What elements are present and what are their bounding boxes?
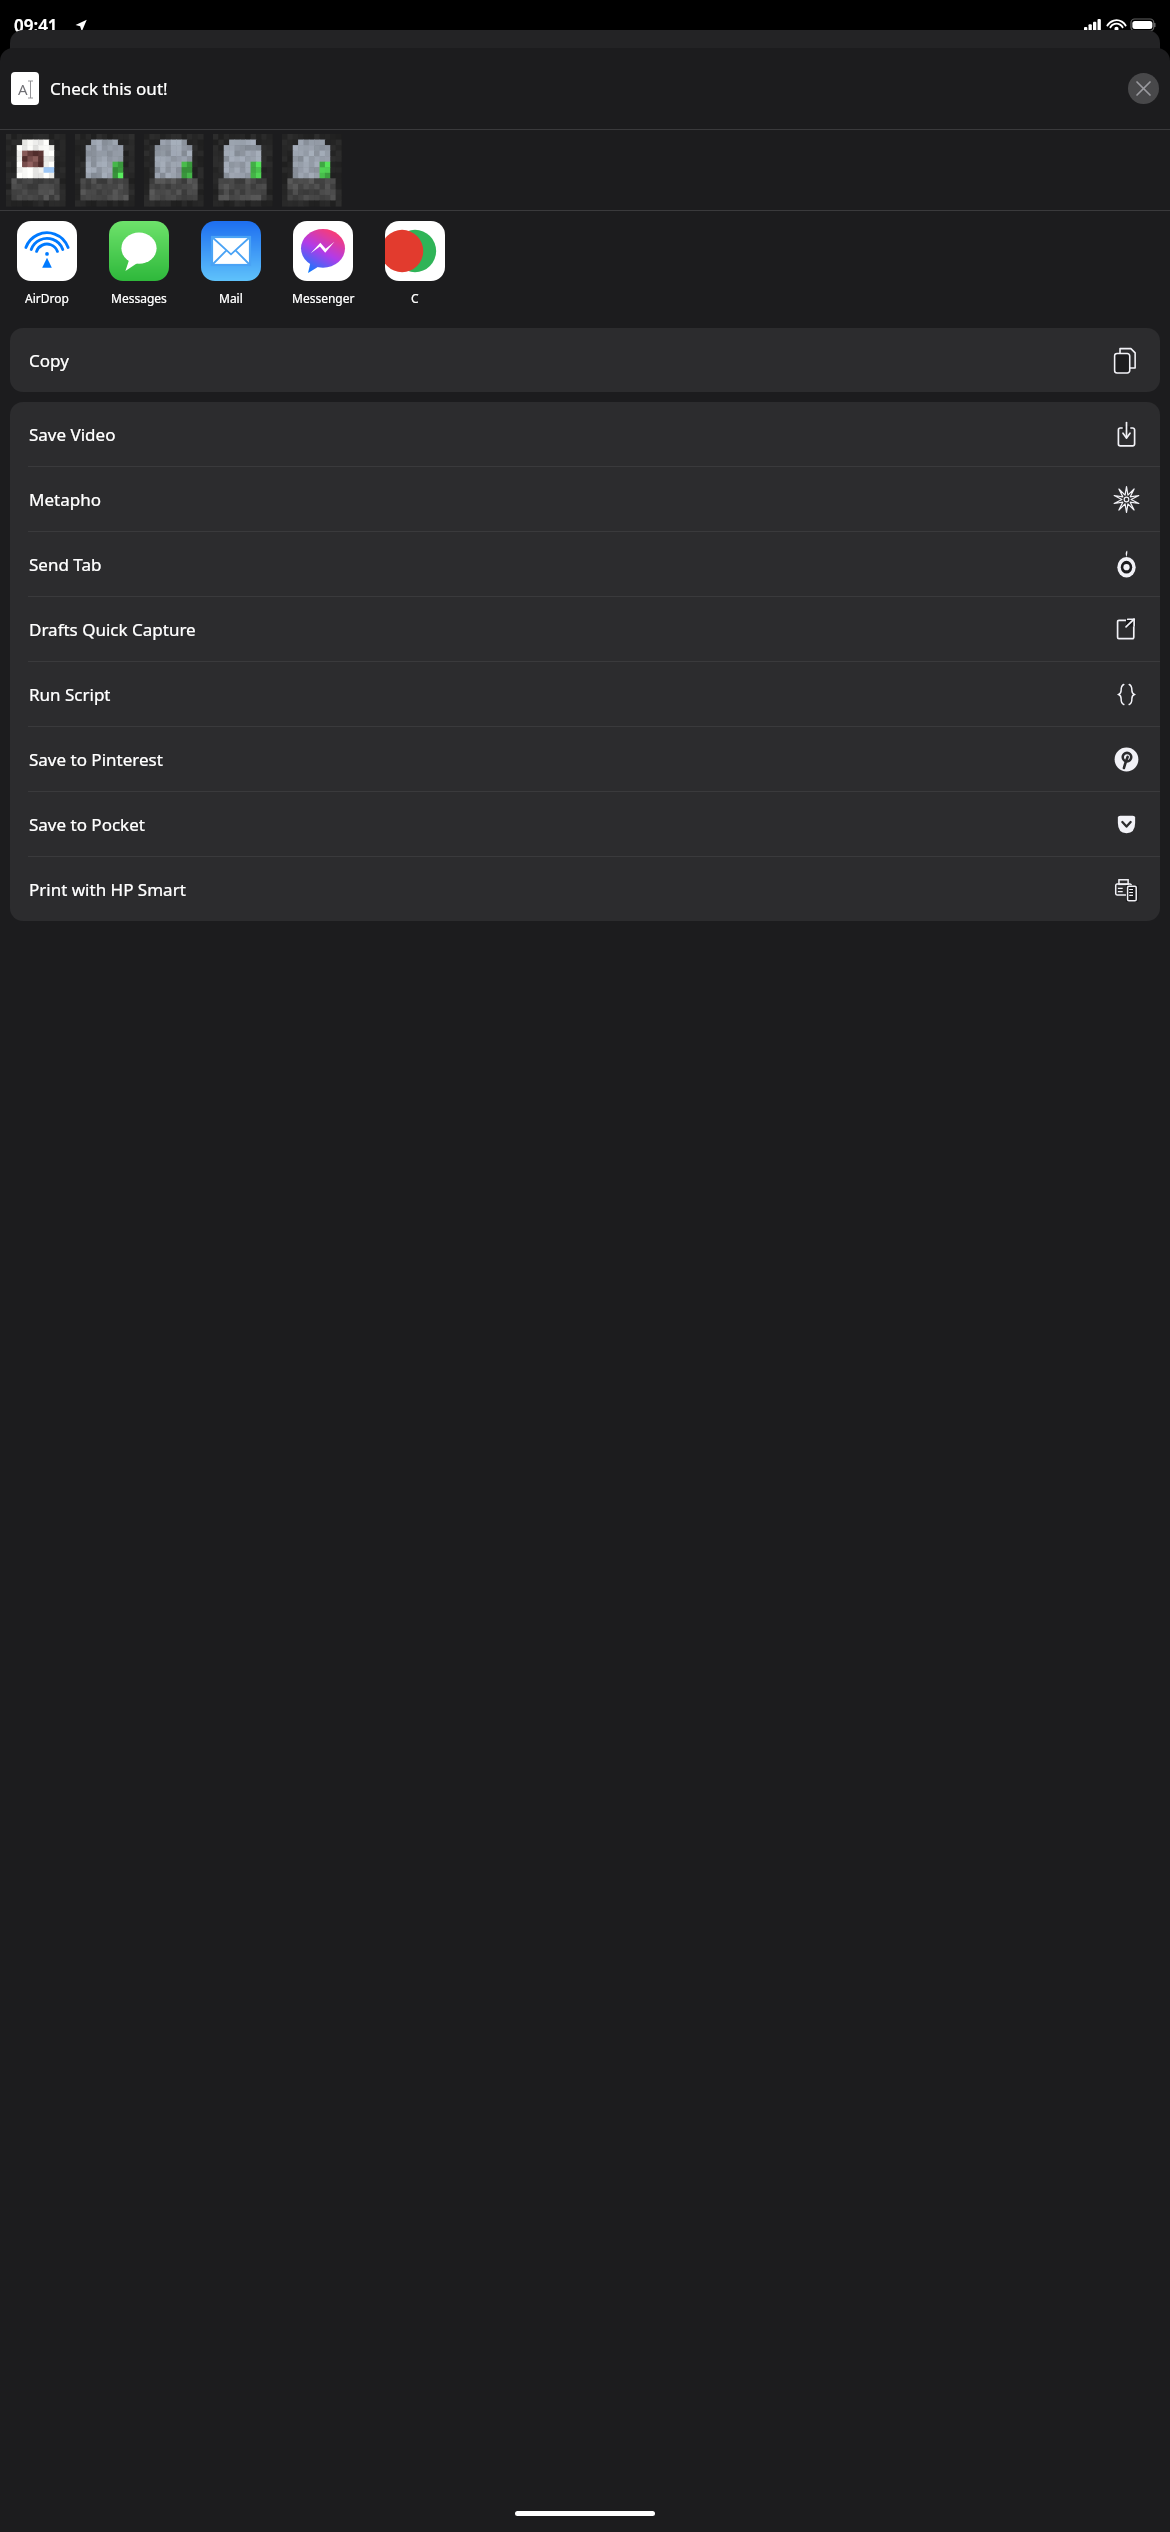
button[interactable]: Metapho xyxy=(10,467,1160,531)
staticText: C xyxy=(411,290,419,306)
button[interactable]: Save to Pinterest xyxy=(10,727,1160,791)
button[interactable]: Photo thumbnail xyxy=(144,134,203,206)
staticText: Send Tab xyxy=(29,553,1113,576)
staticText: Check this out! xyxy=(50,77,1128,100)
button[interactable]: Mail xyxy=(195,211,267,306)
staticText: 09:41 xyxy=(14,14,58,37)
staticText: Print with HP Smart xyxy=(29,878,1113,901)
staticText: Messages xyxy=(111,290,167,306)
button[interactable]: Save to Pocket xyxy=(10,792,1160,856)
button[interactable]: Photo thumbnail xyxy=(282,134,341,206)
button[interactable]: Drafts Quick Capture xyxy=(10,597,1160,661)
button[interactable]: Messenger xyxy=(287,211,359,306)
staticText: Save Video xyxy=(29,423,1113,446)
staticText: A xyxy=(18,79,28,99)
staticText: AirDrop xyxy=(25,290,69,306)
button[interactable]: Photo thumbnail xyxy=(75,134,134,206)
button[interactable]: Run Script xyxy=(10,662,1160,726)
staticText: Metapho xyxy=(29,488,1113,511)
staticText: Save to Pinterest xyxy=(29,748,1113,771)
button[interactable]: Close xyxy=(1128,73,1159,104)
staticText: Save to Pocket xyxy=(29,813,1113,836)
button[interactable]: C xyxy=(379,211,451,306)
button[interactable]: Photo thumbnail xyxy=(213,134,272,206)
staticText: Run Script xyxy=(29,683,1113,706)
button[interactable]: Photo thumbnail xyxy=(6,134,65,206)
staticText: Messenger xyxy=(292,290,355,306)
staticText: Copy xyxy=(29,349,1113,372)
staticText: Mail xyxy=(219,290,243,306)
button[interactable]: Print with HP Smart xyxy=(10,857,1160,921)
staticText: Drafts Quick Capture xyxy=(29,618,1113,641)
button[interactable]: AirDrop xyxy=(11,211,83,306)
button[interactable]: Save Video xyxy=(10,402,1160,466)
button[interactable]: Messages xyxy=(103,211,175,306)
button[interactable]: Copy xyxy=(10,328,1160,392)
button[interactable]: Send Tab xyxy=(10,532,1160,596)
